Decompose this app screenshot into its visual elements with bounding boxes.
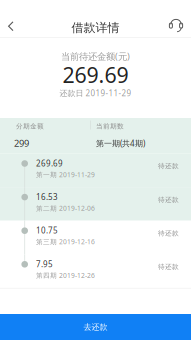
staticText: 分期金额	[16, 122, 44, 130]
staticText: 10.75	[36, 225, 58, 236]
staticText: 269.69	[36, 158, 63, 169]
staticText: 待还款	[158, 263, 179, 271]
button[interactable]: 10.75	[0, 221, 191, 254]
staticText: 借款详情	[71, 20, 119, 35]
button[interactable]: 去还款	[0, 314, 191, 340]
staticText: 7.95	[36, 259, 53, 269]
staticText: 第二期 2019-12-06	[36, 204, 95, 213]
button[interactable]: 269.69	[0, 153, 191, 187]
button[interactable]: 7.95	[0, 254, 191, 288]
staticText: 299	[14, 137, 29, 149]
staticText: 第三期 2019-12-16	[36, 237, 95, 246]
staticText: 当前期数	[96, 122, 124, 130]
staticText: 第四期 2019-12-26	[36, 271, 95, 280]
staticText: 待还款	[158, 196, 179, 204]
button[interactable]: Back	[0, 0, 24, 37]
staticText: 16.53	[36, 192, 58, 202]
staticText: 当前待还金额(元)	[61, 50, 130, 62]
button[interactable]: 16.53	[0, 187, 191, 221]
staticText: 第一期 2019-11-29	[36, 170, 95, 179]
staticText: 待还款	[158, 162, 179, 170]
button[interactable]: Customer service	[159, 0, 191, 38]
staticText: 待还款	[158, 229, 179, 237]
staticText: 去还款	[83, 322, 107, 332]
staticText: 第一期(共4期)	[96, 138, 145, 149]
staticText: 269.69	[62, 60, 128, 89]
staticText: 还款日 2019-11-29	[59, 88, 131, 98]
